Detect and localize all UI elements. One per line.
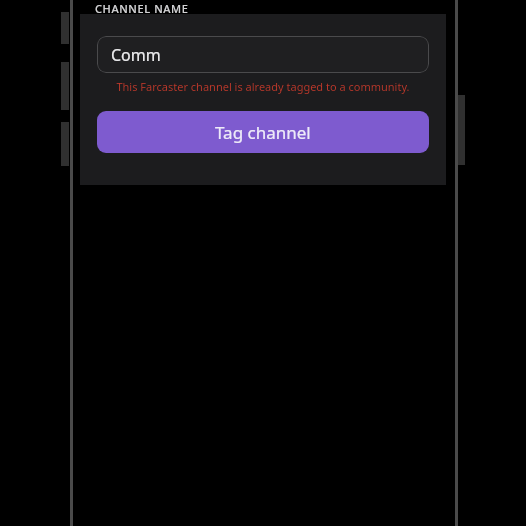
staticText: CHANNEL NAME: [95, 1, 189, 16]
staticText: Comm: [111, 44, 161, 66]
button[interactable]: Comm: [97, 36, 429, 73]
button[interactable]: Tag channel: [97, 111, 429, 153]
staticText: Tag channel: [215, 121, 311, 144]
staticText: This Farcaster channel is already tagged…: [116, 79, 410, 94]
